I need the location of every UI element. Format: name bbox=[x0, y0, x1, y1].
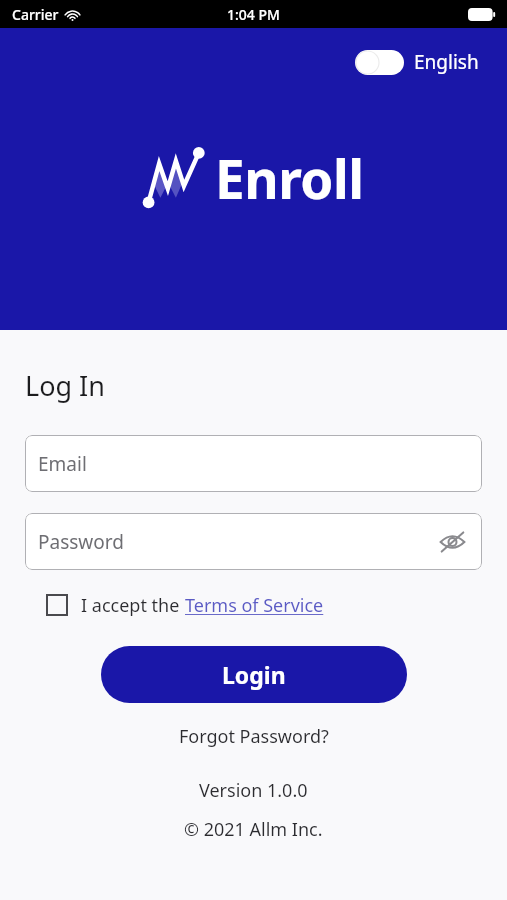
staticText: Version 1.0.0 bbox=[199, 778, 308, 803]
button[interactable]: English bbox=[351, 45, 483, 79]
button[interactable]: Password bbox=[25, 513, 482, 570]
staticText: Email bbox=[38, 451, 87, 477]
staticText: Password bbox=[38, 529, 124, 555]
staticText: I accept the bbox=[81, 593, 185, 618]
button[interactable]: Email bbox=[25, 435, 482, 492]
button[interactable]: Accept terms checkbox bbox=[44, 592, 70, 618]
button[interactable]: Terms of Service bbox=[185, 593, 324, 618]
staticText: Forgot Password? bbox=[179, 724, 329, 749]
staticText: Terms of Service bbox=[185, 593, 324, 618]
button[interactable]: Forgot Password? bbox=[173, 722, 335, 751]
staticText: © 2021 Allm Inc. bbox=[184, 817, 323, 842]
button[interactable]: Login bbox=[101, 646, 407, 703]
staticText: Enroll bbox=[215, 142, 364, 214]
staticText: Log In bbox=[25, 367, 105, 404]
button[interactable]: Show password bbox=[436, 526, 468, 558]
staticText: English bbox=[414, 49, 479, 75]
staticText: Carrier bbox=[12, 5, 59, 24]
staticText: Login bbox=[222, 659, 286, 690]
staticText: 1:04 PM bbox=[227, 5, 280, 24]
